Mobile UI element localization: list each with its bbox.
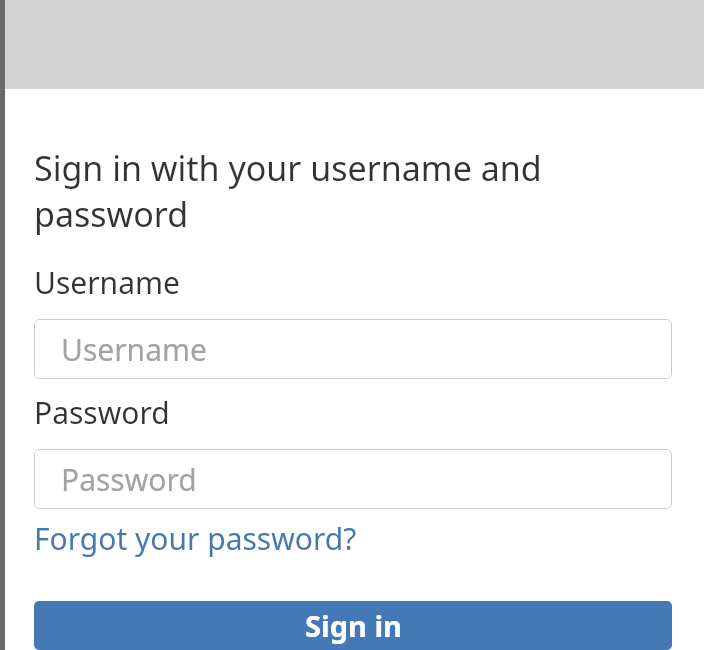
staticText: Sign in with your username and password: [34, 145, 672, 237]
staticText: Password: [61, 459, 197, 500]
staticText: Username: [34, 262, 180, 303]
staticText: Username: [61, 329, 207, 370]
button[interactable]: Sign in: [34, 601, 672, 650]
button[interactable]: Password: [34, 449, 672, 509]
button[interactable]: Username: [34, 319, 672, 379]
button[interactable]: Forgot your password?: [34, 518, 357, 559]
staticText: Password: [34, 392, 170, 433]
staticText: Forgot your password?: [34, 518, 357, 559]
staticText: Sign in: [305, 606, 402, 645]
